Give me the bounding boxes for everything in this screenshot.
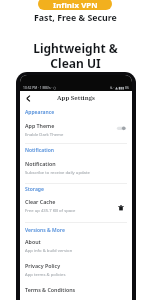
staticText: Notification: [25, 160, 56, 167]
staticText: Notification: [25, 147, 54, 154]
button[interactable]: Privacy Policy: [20, 262, 132, 280]
staticText: App Settings: [57, 94, 95, 102]
staticText: About: [25, 238, 41, 245]
staticText: Lightweight & Clean UI: [33, 40, 118, 72]
staticText: Clear Cache: [25, 198, 56, 205]
staticText: 10:52 PM · 1 MB/s · ○: [23, 85, 57, 89]
staticText: ⇅ · ▲ ▮▮▮ 86: [110, 85, 129, 89]
staticText: Privacy Policy: [25, 262, 61, 269]
staticText: Terms & Conditions: [25, 286, 76, 293]
staticText: Free up 435.7 KB of space: [25, 208, 76, 214]
button[interactable]: Clear Cache: [20, 198, 132, 216]
button[interactable]: Back: [22, 92, 34, 104]
button[interactable]: Terms & Conditions: [20, 286, 132, 297]
staticText: Subscribe to receive daily update: [25, 170, 90, 176]
staticText: App info & build version: [25, 248, 73, 254]
button[interactable]: Clear cache: [116, 203, 125, 212]
button[interactable]: Toggle dark theme: [116, 125, 127, 131]
staticText: Versions & More: [25, 227, 65, 234]
button[interactable]: Notification: [20, 160, 132, 178]
staticText: Storage: [25, 186, 44, 193]
button[interactable]: About: [20, 238, 132, 256]
button[interactable]: App Theme: [20, 122, 132, 140]
staticText: App Theme: [25, 122, 55, 129]
staticText: Fast, Free & Secure: [34, 12, 117, 24]
staticText: Infinix VPN: [53, 0, 98, 10]
staticText: Appearance: [25, 109, 55, 116]
staticText: App terms & policies: [25, 272, 66, 278]
staticText: Enable Dark Theme: [25, 132, 64, 138]
